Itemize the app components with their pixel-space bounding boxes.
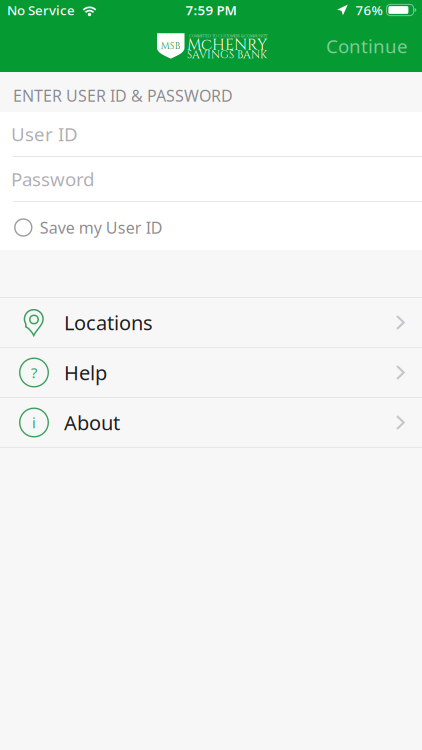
staticText: SAVINGS BANK bbox=[187, 48, 267, 62]
staticText: i bbox=[32, 413, 36, 432]
staticText: Locations bbox=[64, 309, 153, 336]
button[interactable]: i bbox=[0, 398, 422, 448]
staticText: About bbox=[64, 409, 120, 436]
button[interactable]: User ID bbox=[0, 112, 422, 156]
staticText: Committed To Customers & Community bbox=[189, 33, 267, 39]
button[interactable]: Locations bbox=[0, 298, 422, 348]
staticText: Continue bbox=[326, 34, 408, 58]
button[interactable]: Save my User ID bbox=[0, 202, 422, 250]
button[interactable]: ? bbox=[0, 348, 422, 398]
staticText: User ID bbox=[11, 122, 78, 146]
staticText: McHENRY bbox=[187, 34, 267, 56]
button[interactable]: Continue bbox=[312, 24, 422, 68]
staticText: 7:59 PM bbox=[185, 1, 236, 19]
staticText: ? bbox=[31, 363, 37, 382]
staticText: Save my User ID bbox=[40, 217, 163, 238]
staticText: Help bbox=[64, 359, 107, 386]
staticText: No Service bbox=[7, 1, 75, 19]
staticText: MSB bbox=[161, 40, 181, 53]
staticText: Password bbox=[11, 167, 94, 191]
staticText: ENTER USER ID & PASSWORD bbox=[13, 85, 233, 106]
staticText: 76% bbox=[356, 1, 383, 19]
button[interactable]: Password bbox=[0, 157, 422, 201]
